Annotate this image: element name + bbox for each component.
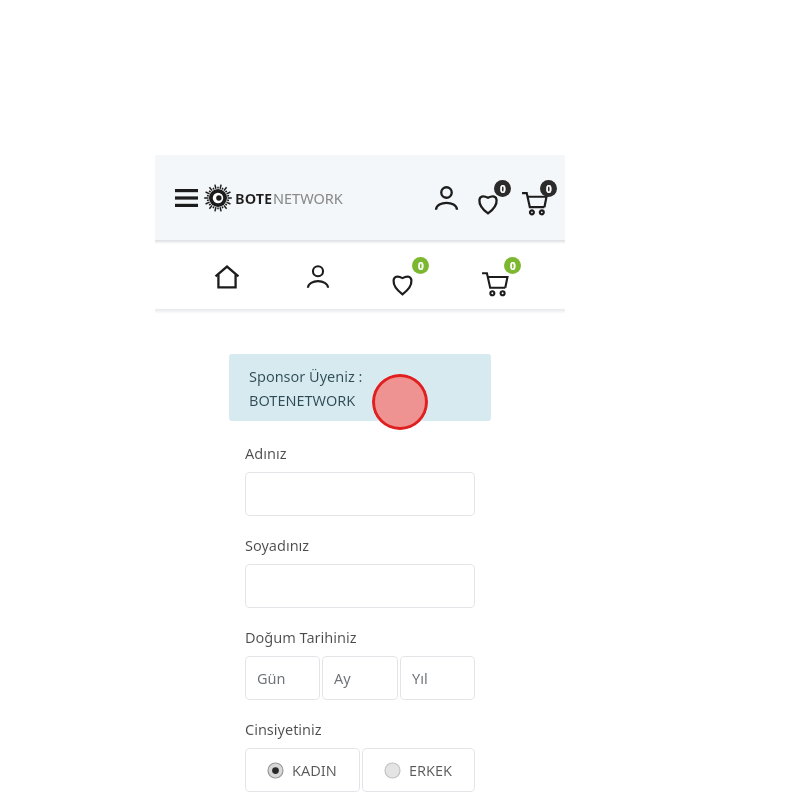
button[interactable] <box>245 472 475 516</box>
staticText: Doğum Tarihiniz <box>245 627 357 647</box>
button[interactable]: Gün <box>245 656 320 700</box>
staticText: Sponsor Üyeniz : <box>249 366 363 386</box>
button[interactable]: Cart <box>455 244 547 309</box>
button[interactable]: Favorites <box>363 244 455 309</box>
staticText: 0 <box>510 259 516 273</box>
staticText: 0 <box>500 182 506 196</box>
button[interactable]: Cart <box>517 176 561 220</box>
staticText: Soyadınız <box>245 535 310 555</box>
staticText: BOTENETWORK <box>249 390 356 410</box>
button[interactable]: Account <box>425 177 467 219</box>
staticText: BOTE <box>235 188 273 208</box>
button[interactable]: Sponsor Üyeniz : <box>229 354 491 421</box>
button[interactable]: Menu <box>166 178 206 218</box>
staticText: KADIN <box>292 760 337 780</box>
staticText: 0 <box>418 259 424 273</box>
button[interactable]: Profile <box>272 244 363 309</box>
staticText: ERKEK <box>409 760 453 780</box>
staticText: Yıl <box>412 668 428 688</box>
button[interactable]: Yıl <box>400 656 475 700</box>
staticText: Adınız <box>245 443 287 463</box>
staticText: NETWORK <box>273 188 343 208</box>
staticText: Ay <box>334 668 351 688</box>
staticText: Gün <box>257 668 286 688</box>
button[interactable]: Favorites <box>471 176 515 220</box>
staticText: 0 <box>546 182 552 196</box>
button[interactable] <box>245 564 475 608</box>
button[interactable]: Home <box>181 244 272 309</box>
button[interactable]: KADIN <box>245 748 360 792</box>
staticText: Cinsiyetiniz <box>245 719 322 739</box>
button[interactable]: Ay <box>322 656 398 700</box>
button[interactable]: BOTE <box>203 183 343 213</box>
button[interactable]: ERKEK <box>362 748 475 792</box>
